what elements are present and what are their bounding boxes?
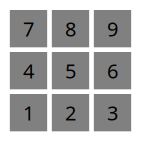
button[interactable]: 1 (10, 94, 47, 131)
staticText: 7 (23, 15, 34, 42)
button[interactable]: 5 (52, 52, 89, 89)
staticText: 8 (65, 15, 76, 42)
button[interactable]: 7 (10, 10, 47, 47)
button[interactable]: 8 (52, 10, 89, 47)
staticText: 4 (23, 57, 34, 84)
staticText: 1 (23, 99, 34, 126)
button[interactable]: 3 (94, 94, 131, 131)
staticText: 3 (107, 99, 118, 126)
button[interactable]: 6 (94, 52, 131, 89)
button[interactable]: 2 (52, 94, 89, 131)
staticText: 2 (65, 99, 76, 126)
button[interactable]: 4 (10, 52, 47, 89)
button[interactable]: 9 (94, 10, 131, 47)
staticText: 6 (107, 57, 118, 84)
staticText: 9 (107, 15, 118, 42)
staticText: 5 (65, 57, 76, 84)
